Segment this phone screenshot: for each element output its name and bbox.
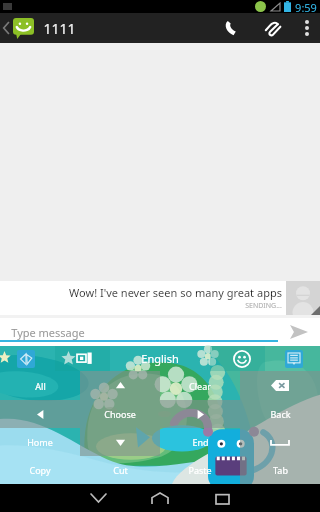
staticText: Home — [27, 436, 53, 448]
button[interactable]: Clear — [160, 371, 240, 400]
button[interactable] — [0, 400, 80, 428]
button[interactable]: Back — [67, 484, 129, 512]
staticText: Wow! I've never seen so many great apps — [69, 285, 282, 300]
staticText: All — [35, 380, 46, 392]
button[interactable] — [240, 371, 320, 400]
button[interactable]: Keyboard — [285, 350, 303, 368]
staticText: Choose — [104, 408, 136, 420]
button[interactable] — [80, 428, 160, 456]
button[interactable] — [160, 400, 240, 428]
staticText: Copy — [29, 464, 51, 476]
button[interactable]: Copy — [0, 456, 80, 484]
staticText: End — [192, 436, 209, 448]
button[interactable]: Cut — [80, 456, 160, 484]
staticText: Back — [270, 408, 291, 420]
button[interactable]: All — [0, 371, 80, 400]
staticText: Type message — [11, 325, 85, 340]
button[interactable]: Send — [278, 318, 320, 346]
button[interactable]: Home — [0, 428, 80, 456]
button[interactable]: Theme — [17, 350, 35, 368]
staticText: Cut — [113, 464, 128, 476]
button[interactable]: More options — [294, 13, 320, 43]
button[interactable]: Type message — [0, 318, 278, 346]
button[interactable]: End — [160, 428, 240, 456]
staticText: English — [141, 351, 179, 366]
button[interactable]: Tab — [240, 456, 320, 484]
staticText: SENDING... — [245, 301, 282, 311]
button[interactable]: Attach — [252, 13, 294, 43]
button[interactable] — [80, 371, 160, 400]
staticText: 9:59 — [295, 0, 317, 13]
button[interactable]: Recents — [191, 484, 253, 512]
button[interactable]: Home — [129, 484, 191, 512]
button[interactable]: Choose — [80, 400, 160, 428]
button[interactable]: Paste — [160, 456, 240, 484]
button[interactable] — [240, 428, 320, 456]
staticText: Paste — [188, 464, 212, 476]
staticText: Clear — [189, 380, 211, 392]
button[interactable]: Call — [210, 13, 252, 43]
staticText: 1111 — [43, 19, 76, 38]
button[interactable]: Switch layout — [77, 351, 92, 366]
button[interactable]: 1111 — [0, 13, 82, 43]
button[interactable]: Back — [240, 400, 320, 428]
staticText: Tab — [273, 464, 288, 476]
button[interactable]: Emoji — [233, 350, 251, 368]
button[interactable]: Wow! I've never seen so many great apps — [0, 281, 320, 315]
